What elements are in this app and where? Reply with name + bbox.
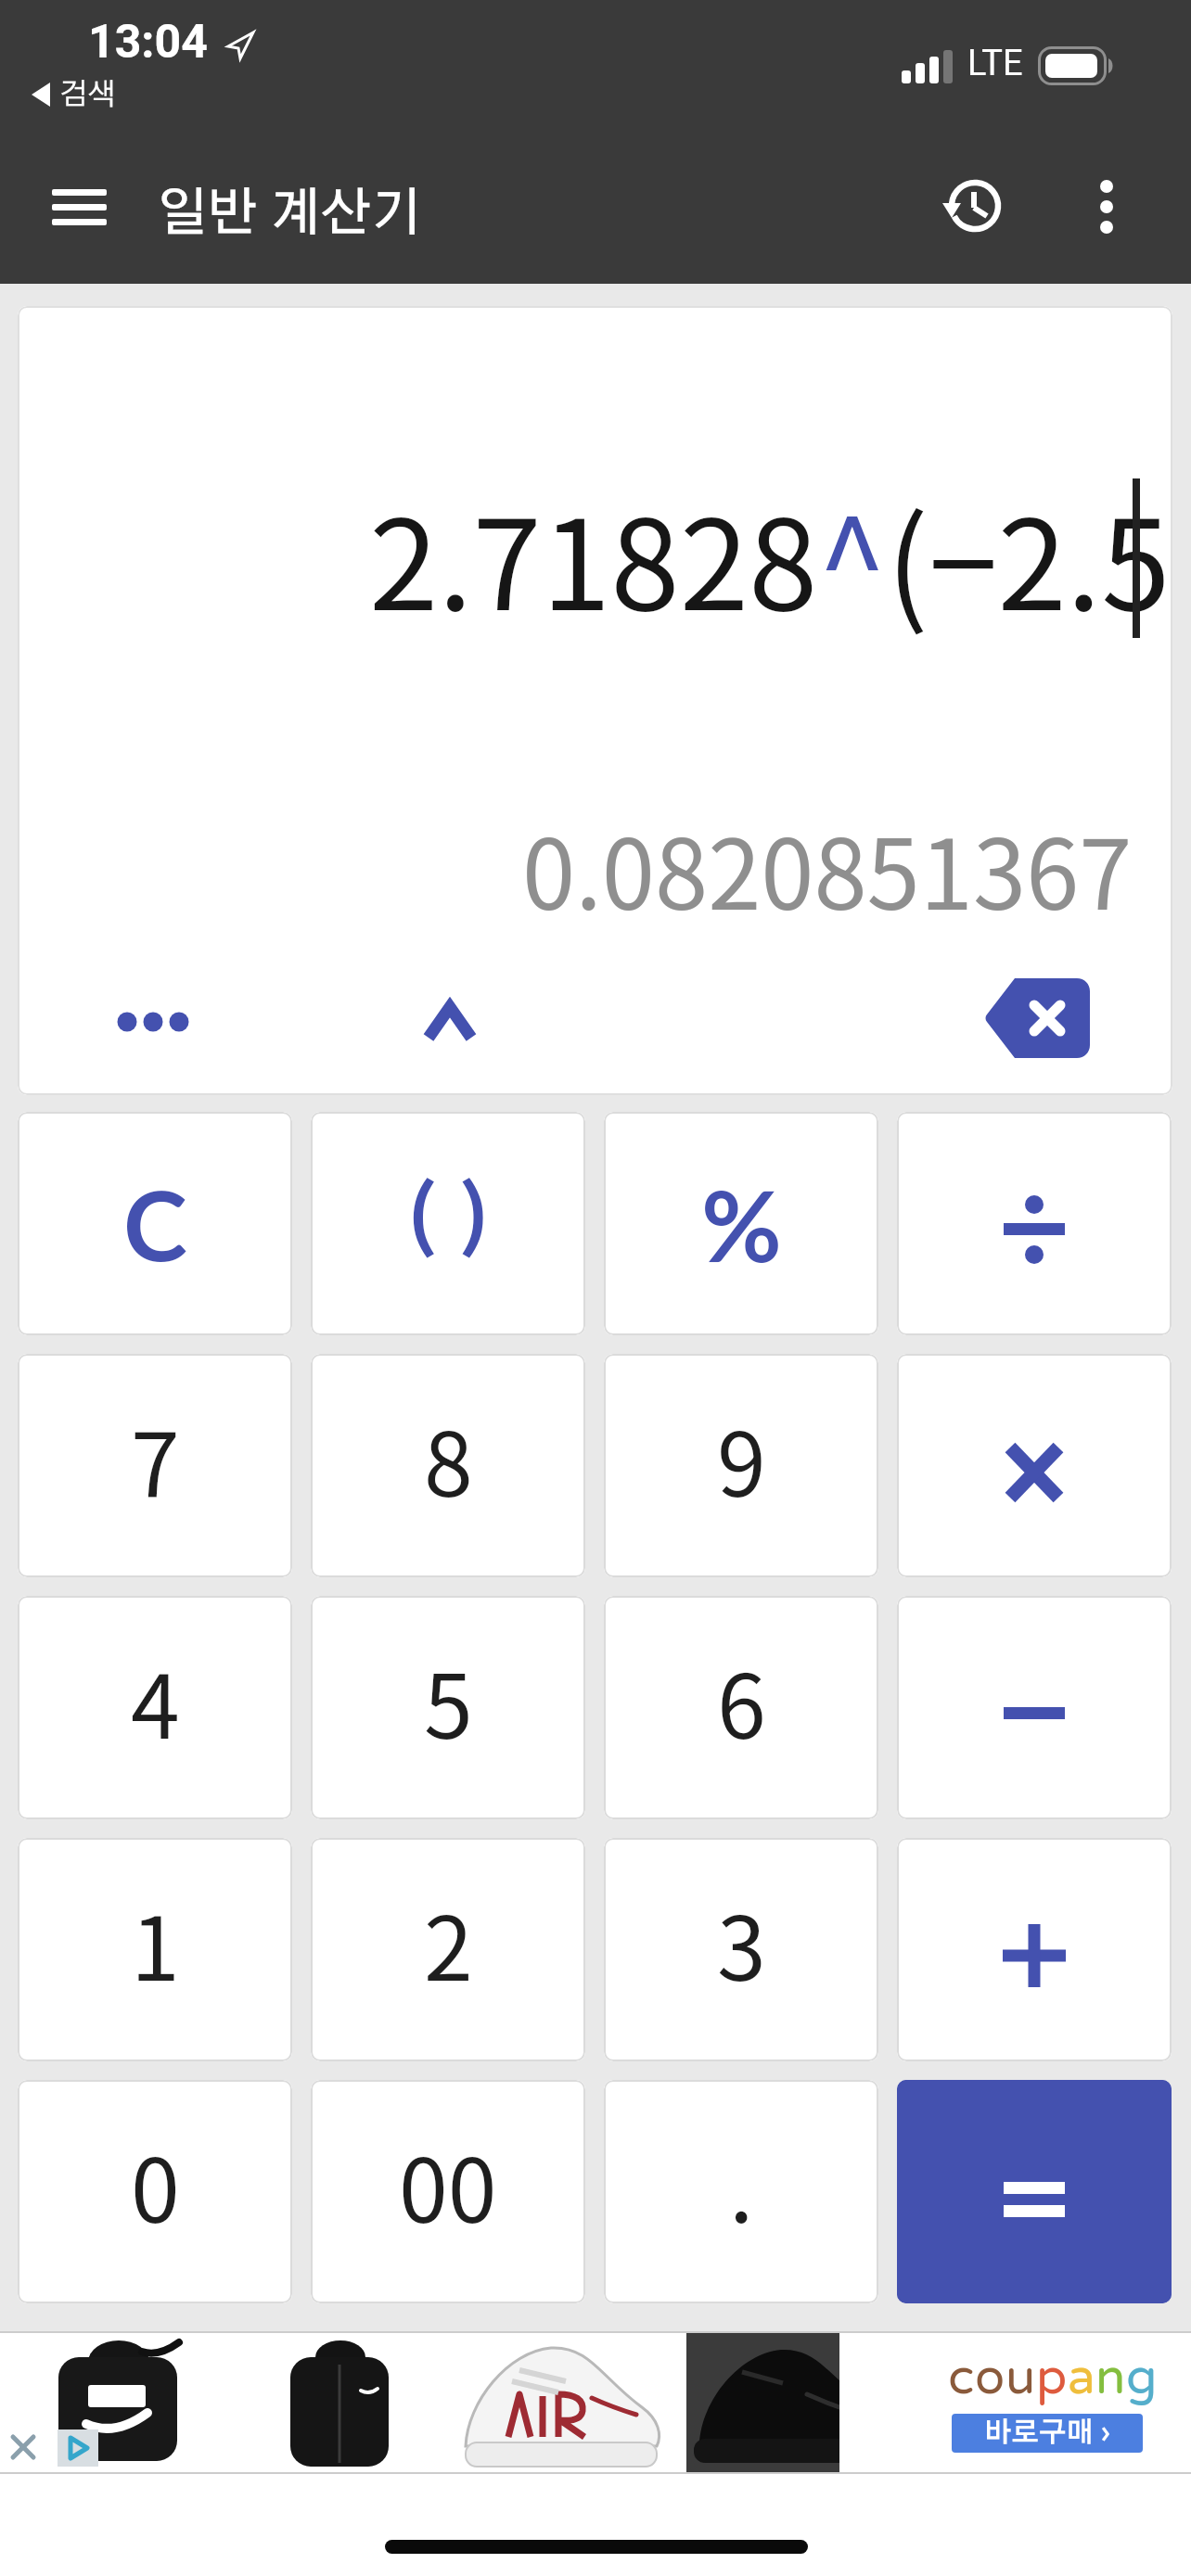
staticText: 검색 bbox=[59, 80, 117, 109]
staticText: 일반 계산기 bbox=[157, 188, 423, 240]
staticText: 3 bbox=[717, 1879, 766, 2007]
button[interactable] bbox=[1069, 165, 1145, 249]
button[interactable] bbox=[390, 983, 510, 1061]
staticText: 00 bbox=[399, 2121, 497, 2249]
staticText: 0 bbox=[131, 2121, 180, 2249]
button[interactable]: 3 bbox=[604, 1838, 878, 2061]
staticText: LTE bbox=[967, 43, 1023, 84]
staticText: 6 bbox=[717, 1637, 766, 1765]
button[interactable]: 바로구매 › bbox=[952, 2414, 1143, 2453]
staticText: 0.0820851367 bbox=[522, 799, 1133, 937]
button[interactable] bbox=[93, 983, 213, 1061]
button[interactable]: 00 bbox=[311, 2080, 585, 2303]
staticText: C bbox=[123, 1166, 187, 1282]
staticText: % bbox=[701, 1165, 782, 1282]
staticText: 13:04 bbox=[88, 15, 208, 70]
button[interactable]: 5 bbox=[311, 1596, 585, 1819]
button[interactable]: 6 bbox=[604, 1596, 878, 1819]
staticText: 5 bbox=[424, 1637, 473, 1765]
button[interactable]: 검색 bbox=[30, 80, 117, 109]
staticText: a bbox=[1068, 2348, 1095, 2407]
button[interactable] bbox=[7, 2431, 41, 2465]
staticText: 1 bbox=[131, 1879, 180, 2007]
staticText: u bbox=[1005, 2348, 1036, 2407]
staticText: 4 bbox=[131, 1637, 180, 1765]
staticText: 9 bbox=[717, 1395, 766, 1523]
button[interactable]: 4 bbox=[18, 1596, 292, 1819]
staticText: ( ) bbox=[403, 1186, 493, 1262]
button[interactable] bbox=[233, 2333, 445, 2472]
button[interactable]: 9 bbox=[604, 1354, 878, 1577]
button[interactable] bbox=[897, 1112, 1172, 1335]
button[interactable] bbox=[897, 1354, 1172, 1577]
staticText: o bbox=[975, 2348, 1005, 2407]
button[interactable] bbox=[8, 2333, 213, 2472]
staticText: 2.71828^(−2.5 bbox=[369, 466, 1171, 646]
button[interactable] bbox=[37, 172, 122, 242]
button[interactable]: 0 bbox=[18, 2080, 292, 2303]
staticText: 바로구매 › bbox=[984, 2419, 1111, 2447]
button[interactable] bbox=[897, 1596, 1172, 1819]
staticText: . bbox=[729, 2121, 754, 2249]
staticText: 8 bbox=[424, 1395, 473, 1523]
button[interactable]: 1 bbox=[18, 1838, 292, 2061]
staticText: 7 bbox=[131, 1395, 180, 1523]
staticText: n bbox=[1095, 2348, 1126, 2407]
button[interactable] bbox=[897, 2080, 1172, 2303]
button[interactable] bbox=[933, 165, 1017, 249]
button[interactable] bbox=[985, 978, 1090, 1058]
button[interactable]: 2 bbox=[311, 1838, 585, 2061]
button[interactable] bbox=[686, 2333, 895, 2472]
button[interactable]: . bbox=[604, 2080, 878, 2303]
staticText: c bbox=[948, 2348, 975, 2407]
staticText: 2 bbox=[424, 1879, 473, 2007]
button[interactable]: % bbox=[604, 1112, 878, 1335]
button[interactable]: ( ) bbox=[311, 1112, 585, 1335]
staticText: g bbox=[1126, 2348, 1158, 2407]
button[interactable]: C bbox=[18, 1112, 292, 1335]
button[interactable] bbox=[58, 2429, 98, 2467]
button[interactable]: 7 bbox=[18, 1354, 292, 1577]
button[interactable]: 8 bbox=[311, 1354, 585, 1577]
button[interactable] bbox=[897, 1838, 1172, 2061]
staticText: p bbox=[1036, 2348, 1068, 2407]
button[interactable] bbox=[455, 2333, 667, 2472]
